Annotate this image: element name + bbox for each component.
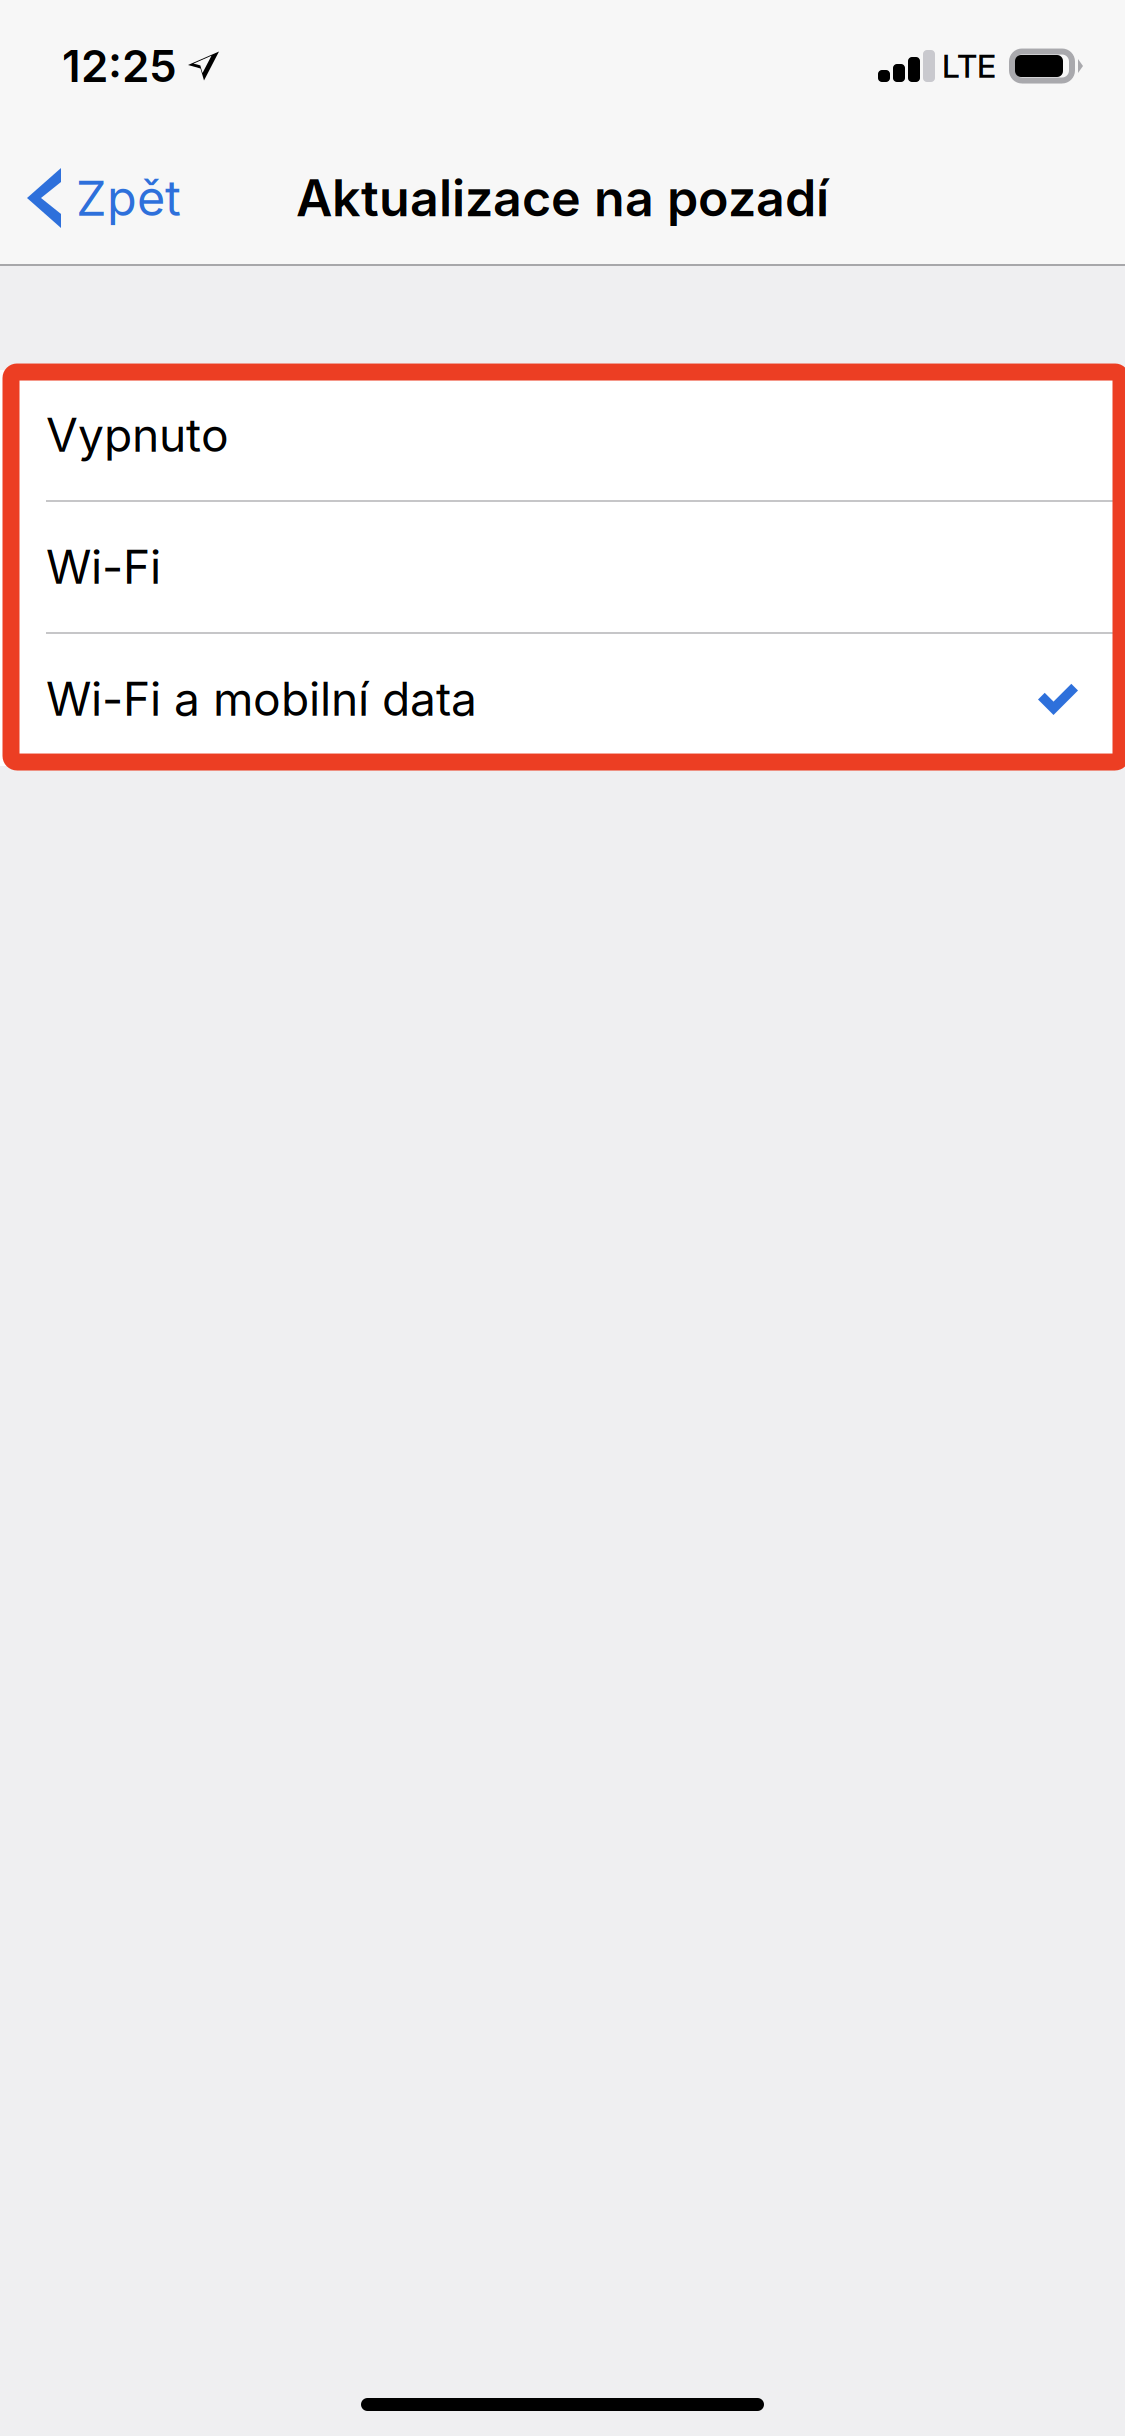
- staticText: Aktualizace na pozadí: [296, 168, 829, 228]
- staticText: Zpět: [76, 169, 181, 227]
- button[interactable]: Zpět: [0, 132, 300, 264]
- staticText: Wi-Fi: [46, 539, 161, 595]
- staticText: Vypnuto: [46, 407, 229, 463]
- staticText: LTE: [942, 47, 996, 85]
- button[interactable]: Wi-Fi: [0, 502, 1125, 634]
- button[interactable]: Wi-Fi a mobilní data: [0, 634, 1125, 766]
- staticText: Wi-Fi a mobilní data: [46, 671, 477, 727]
- staticText: 12:25: [62, 39, 177, 93]
- button[interactable]: Vypnuto: [0, 370, 1125, 502]
